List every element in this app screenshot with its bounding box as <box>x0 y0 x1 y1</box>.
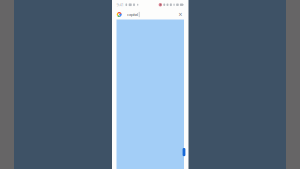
button[interactable]: Clear search <box>177 9 184 19</box>
staticText: × <box>178 10 182 19</box>
staticText: capital <box>127 12 138 17</box>
staticText: 9:41 <box>116 2 123 7</box>
button[interactable]: capital <box>116 9 177 19</box>
